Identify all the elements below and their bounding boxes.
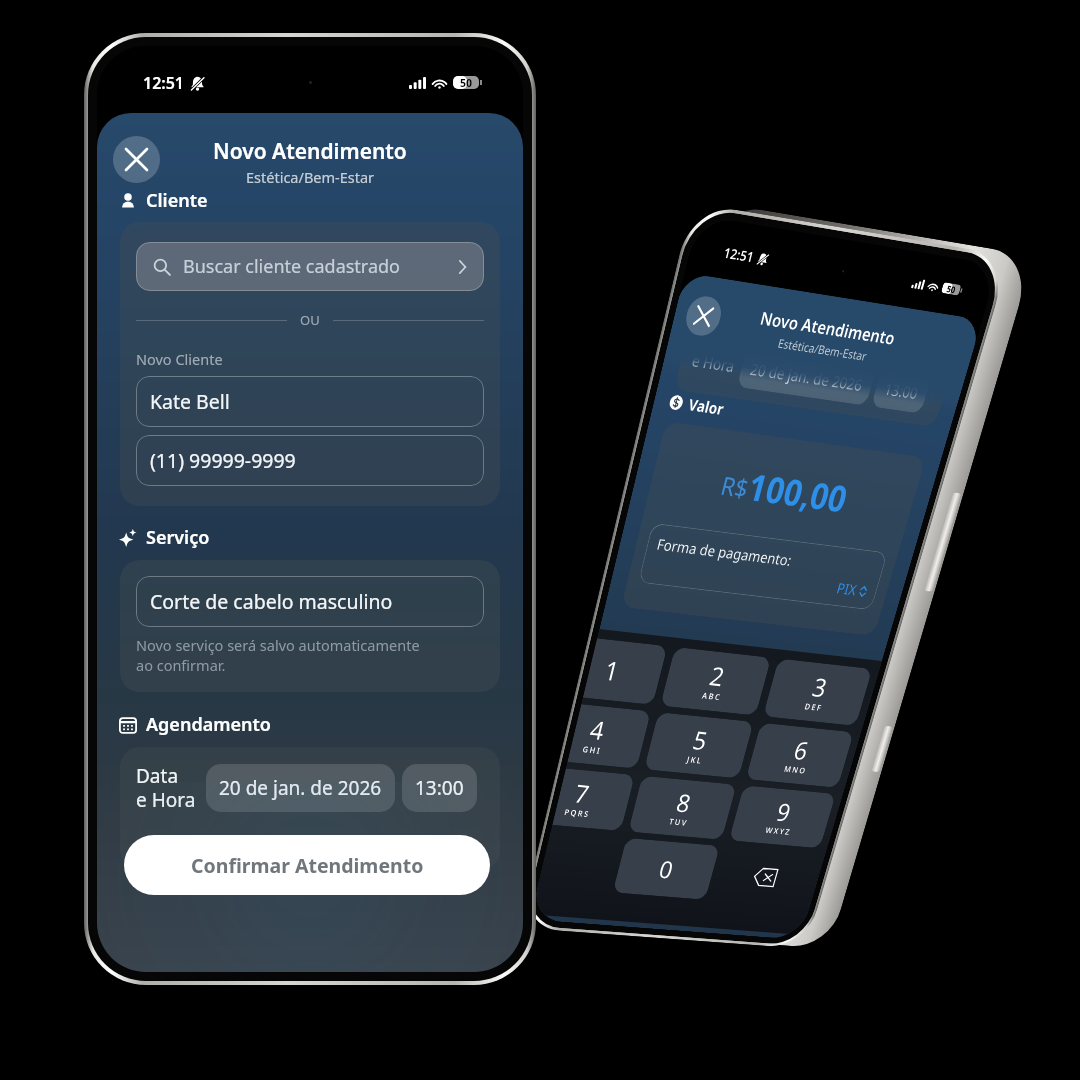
staticText: Serviço xyxy=(146,525,210,550)
staticText: 50 xyxy=(460,76,473,89)
staticText: 20 de jan. de 2026 xyxy=(748,358,865,396)
staticText: Kate Bell xyxy=(150,388,230,415)
staticText: 6 xyxy=(790,733,812,767)
staticText: Agendamento xyxy=(146,712,271,737)
staticText: 5 xyxy=(689,723,711,757)
staticText: (11) 99999-9999 xyxy=(150,447,296,474)
staticText: 13:00 xyxy=(882,378,921,404)
staticText: 2 xyxy=(706,658,728,694)
button[interactable]: 2 xyxy=(660,647,771,716)
staticText: R$ xyxy=(717,468,753,506)
staticText: DEF xyxy=(803,700,824,713)
staticText: Valor xyxy=(686,394,726,420)
staticText: 12:51 xyxy=(722,243,756,267)
staticText: Corte de cabelo masculino xyxy=(150,588,393,615)
button[interactable]: Fechar xyxy=(113,136,160,183)
button[interactable]: 0 xyxy=(613,838,720,900)
button[interactable]: Fechar xyxy=(682,294,725,338)
staticText: Estética/Bem-Estar xyxy=(776,334,869,364)
staticText: MNO xyxy=(783,763,809,776)
button[interactable]: (11) 99999-9999 xyxy=(136,435,484,486)
staticText: 13:00 xyxy=(415,775,464,801)
button[interactable]: 9 xyxy=(729,785,836,848)
staticText: Novo Cliente xyxy=(136,349,223,369)
staticText: TUV xyxy=(668,816,690,828)
button[interactable]: 8 xyxy=(628,776,737,840)
staticText: GHI xyxy=(581,743,603,756)
staticText: 1 xyxy=(601,652,623,688)
button[interactable]: 3 xyxy=(763,658,872,726)
staticText: 7 xyxy=(571,776,593,810)
staticText: 20 de jan. de 2026 xyxy=(219,775,382,801)
button[interactable]: 13:00 xyxy=(402,764,477,812)
button[interactable]: 1 xyxy=(583,638,667,705)
staticText: 50 xyxy=(946,283,957,295)
button[interactable]: 20 de jan. de 2026 xyxy=(737,348,877,406)
staticText: 4 xyxy=(587,712,608,747)
staticText: Novo serviço será salvo automaticamente … xyxy=(136,635,420,676)
staticText: ABC xyxy=(701,689,723,703)
staticText: Buscar cliente cadastrado xyxy=(183,254,400,279)
staticText: 8 xyxy=(673,786,695,819)
button[interactable]: 13:00 xyxy=(871,368,932,414)
staticText: JKL xyxy=(686,753,705,766)
staticText: Novo Atendimento xyxy=(213,137,407,166)
button[interactable]: 20 de jan. de 2026 xyxy=(206,764,395,812)
button[interactable]: Forma de pagamento: xyxy=(638,523,888,610)
button[interactable]: 4 xyxy=(567,704,651,769)
staticText: WXYZ xyxy=(764,824,793,837)
staticText: PQRS xyxy=(563,806,591,819)
staticText: Cliente xyxy=(146,188,208,213)
staticText: 9 xyxy=(773,795,795,828)
button[interactable]: Corte de cabelo masculino xyxy=(136,576,484,627)
button[interactable]: Kate Bell xyxy=(136,376,484,427)
staticText: Confirmar Atendimento xyxy=(191,852,424,879)
button[interactable]: 5 xyxy=(644,712,754,778)
staticText: e Hora xyxy=(690,350,737,377)
staticText: PIX xyxy=(834,578,859,600)
staticText: 100,00 xyxy=(743,461,853,523)
button[interactable]: Buscar cliente cadastrado xyxy=(136,242,484,291)
staticText: OU xyxy=(300,311,320,329)
button[interactable]: 7 xyxy=(552,768,635,831)
staticText: Novo Atendimento xyxy=(758,306,898,350)
button[interactable]: Confirmar Atendimento xyxy=(124,835,490,895)
button[interactable]: 6 xyxy=(746,723,854,788)
staticText: 12:51 xyxy=(143,72,185,94)
staticText: 3 xyxy=(809,669,831,704)
staticText: Data e Hora xyxy=(136,763,196,812)
button[interactable]: Apagar xyxy=(712,846,818,907)
staticText: 0 xyxy=(656,853,677,885)
staticText: Forma de pagamento: xyxy=(655,534,794,570)
staticText: Estética/Bem-Estar xyxy=(246,167,375,187)
